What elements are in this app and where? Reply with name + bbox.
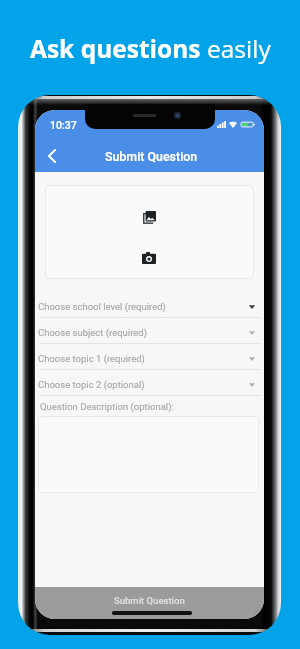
button[interactable]: Add photo	[45, 185, 254, 279]
button[interactable]: Submit Question	[35, 587, 264, 619]
button[interactable]: Choose topic 1 (required)	[35, 344, 264, 370]
button[interactable]: Choose subject (required)	[35, 318, 264, 344]
button[interactable]: Choose school level (required)	[35, 292, 264, 318]
staticText: Choose subject (required)	[38, 327, 147, 338]
staticText: 10:37	[50, 119, 77, 131]
staticText: Submit Question	[105, 149, 198, 164]
button[interactable]: Back	[35, 138, 69, 172]
staticText: Choose topic 1 (required)	[38, 353, 145, 364]
button[interactable]: Question description field	[38, 416, 259, 493]
staticText: easily	[207, 32, 271, 65]
button[interactable]: Choose topic 2 (optional)	[35, 370, 264, 396]
staticText: Choose topic 2 (optional)	[38, 379, 145, 390]
staticText: Ask questions	[30, 32, 207, 65]
staticText: Question Description (optional):	[40, 401, 174, 412]
staticText: Submit Question	[114, 595, 185, 606]
staticText: Choose school level (required)	[38, 301, 166, 312]
